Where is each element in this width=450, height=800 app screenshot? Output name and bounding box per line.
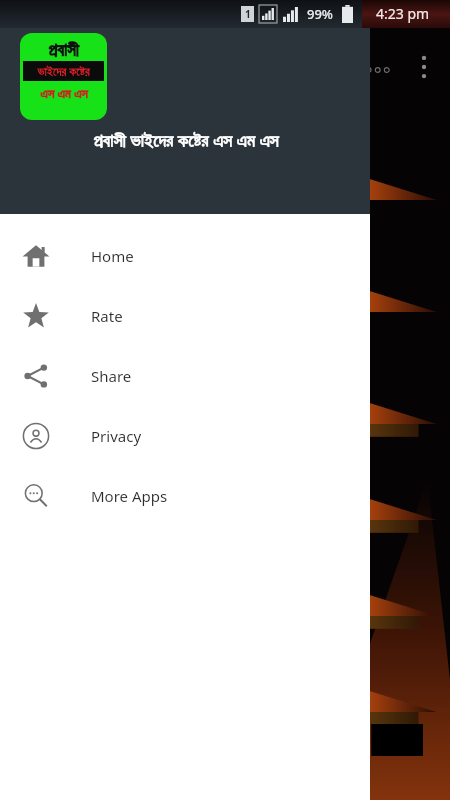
button[interactable]: More Apps [0,466,370,526]
staticText: More Apps [91,486,168,506]
staticText: প্রবাসী [48,42,79,59]
staticText: 99% [307,5,333,23]
staticText: Share [91,366,132,386]
staticText: 4:23 pm [376,4,430,23]
button[interactable]: Share [0,346,370,406]
staticText: এস এম এস [40,84,88,102]
staticText: Rate [91,306,123,326]
button[interactable]: Privacy [0,406,370,466]
staticText: 1 [245,7,251,21]
button[interactable]: Home [0,226,370,286]
button[interactable]: Rate [0,286,370,346]
staticText: ভাইদের কষ্টের [37,63,90,79]
button[interactable]: More options [408,44,440,90]
staticText: প্রবাসী ভাইদের কষ্টের এস এম এস [14,128,358,153]
staticText: Home [91,246,134,266]
staticText: Privacy [91,426,142,446]
